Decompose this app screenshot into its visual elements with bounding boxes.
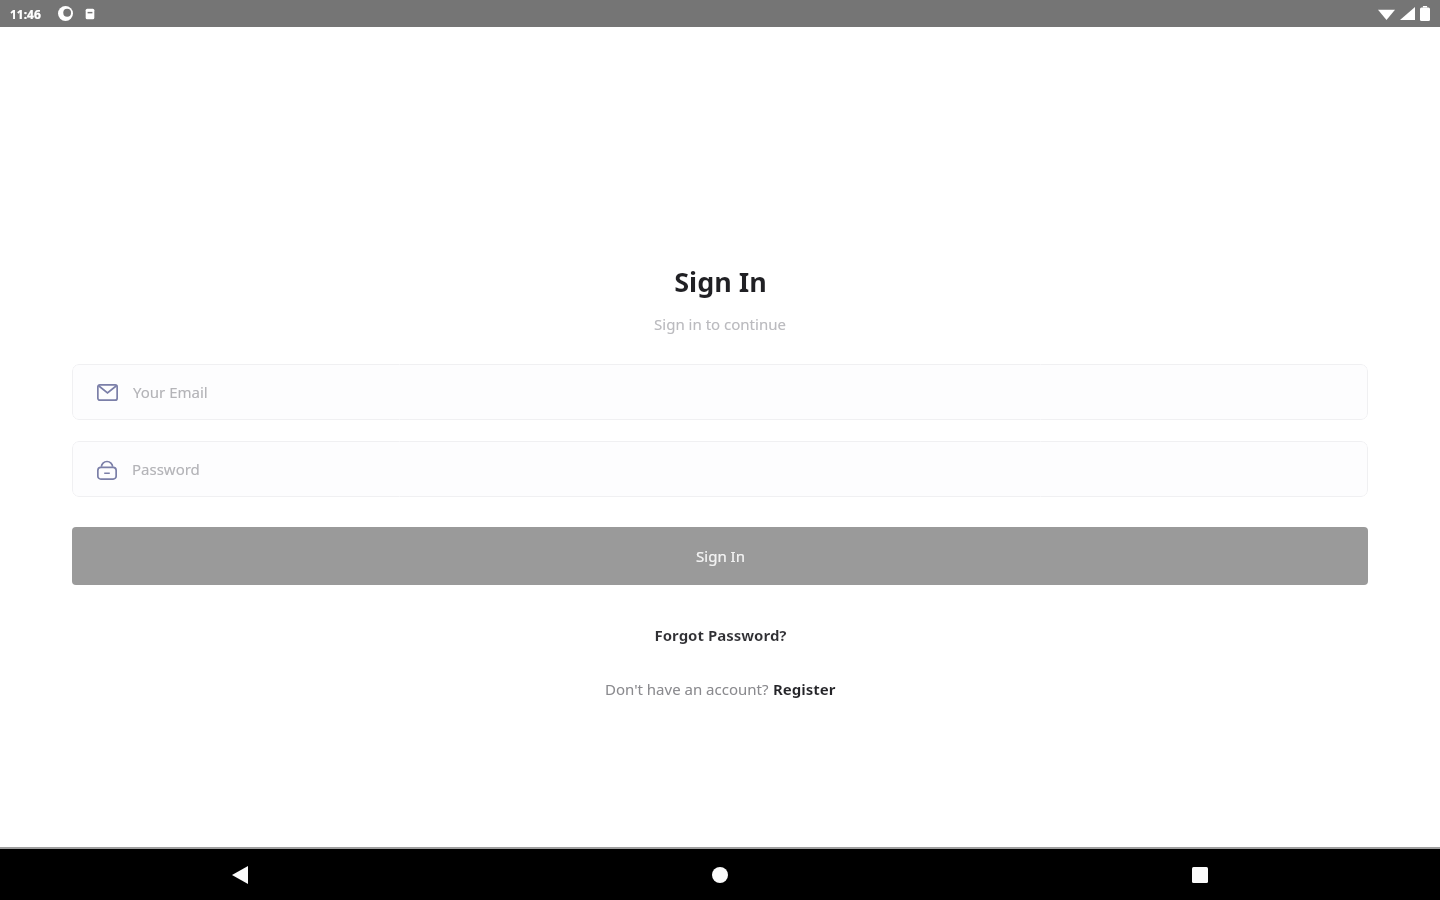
button[interactable]: Home — [480, 849, 960, 900]
button[interactable]: Your Email — [72, 364, 1368, 420]
staticText: Register — [773, 679, 836, 699]
staticText: Your Email — [133, 382, 208, 402]
button[interactable]: Password — [72, 441, 1368, 497]
staticText: Forgot Password? — [654, 625, 787, 645]
button[interactable]: Forgot Password? — [644, 621, 797, 649]
button[interactable]: Don't have an account? — [595, 675, 846, 703]
button[interactable]: Back — [0, 849, 480, 900]
staticText: 11:46 — [10, 6, 41, 22]
staticText: Sign In — [674, 263, 767, 300]
button[interactable]: Recent apps — [960, 849, 1440, 900]
staticText: Password — [132, 459, 200, 479]
staticText: Don't have an account? — [605, 679, 773, 699]
staticText: Sign in to continue — [654, 314, 786, 334]
button[interactable]: Sign In — [72, 527, 1368, 585]
staticText: Sign In — [696, 546, 745, 566]
